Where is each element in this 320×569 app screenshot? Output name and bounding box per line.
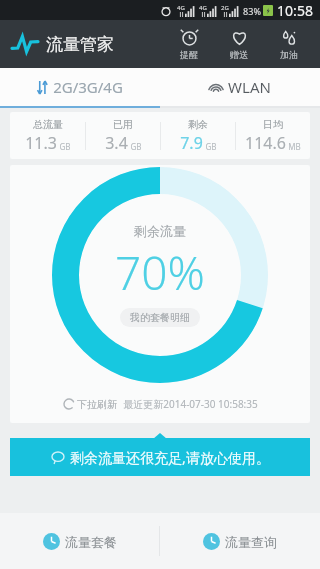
- staticText: 提醒: [180, 49, 198, 60]
- staticText: 流量查询: [225, 534, 277, 550]
- staticText: 下拉刷新: [77, 398, 117, 411]
- staticText: 剩余流量: [134, 223, 186, 239]
- staticText: 2G/3G/4G: [53, 77, 123, 97]
- staticText: GB: [130, 141, 142, 152]
- button[interactable]: 已用: [86, 118, 160, 154]
- button[interactable]: WLAN: [160, 68, 320, 106]
- staticText: 114.6: [245, 132, 286, 154]
- button[interactable]: 流量套餐: [0, 533, 159, 550]
- button[interactable]: 我的套餐明细: [120, 308, 200, 327]
- button[interactable]: 提醒: [164, 24, 214, 64]
- staticText: 10:58: [277, 1, 313, 20]
- staticText: 加油: [280, 49, 298, 60]
- button[interactable]: 2G/3G/4G: [0, 68, 160, 106]
- button[interactable]: 剩余: [161, 118, 235, 154]
- button[interactable]: 剩余流量还很充足,请放心使用。: [10, 438, 310, 476]
- staticText: 11.3: [25, 132, 57, 154]
- staticText: 4G: [177, 4, 185, 12]
- staticText: 7.9: [180, 132, 203, 154]
- staticText: 最近更新2014-07-30 10:58:35: [123, 397, 258, 411]
- staticText: GB: [59, 141, 71, 152]
- staticText: 流量管家: [46, 34, 114, 55]
- staticText: 70%: [115, 241, 205, 304]
- staticText: 2G: [221, 4, 229, 12]
- staticText: 日均: [263, 118, 283, 131]
- staticText: WLAN: [228, 77, 271, 97]
- staticText: 我的套餐明细: [130, 311, 190, 324]
- button[interactable]: 总流量: [10, 118, 85, 154]
- button[interactable]: 流量查询: [160, 533, 320, 550]
- button[interactable]: 赠送: [214, 24, 264, 64]
- staticText: 剩余: [188, 118, 208, 131]
- staticText: MB: [288, 141, 301, 152]
- button[interactable]: 加油: [264, 24, 314, 64]
- staticText: 83%: [243, 5, 261, 17]
- button[interactable]: 下拉刷新: [63, 397, 258, 411]
- staticText: 剩余流量还很充足,请放心使用。: [70, 448, 270, 467]
- staticText: GB: [205, 141, 217, 152]
- staticText: 赠送: [230, 49, 248, 60]
- staticText: 总流量: [33, 118, 63, 131]
- staticText: 流量套餐: [65, 534, 117, 550]
- staticText: 3.4: [105, 132, 128, 154]
- staticText: 已用: [113, 118, 133, 131]
- button[interactable]: 日均: [236, 118, 310, 154]
- staticText: 4G: [199, 4, 207, 12]
